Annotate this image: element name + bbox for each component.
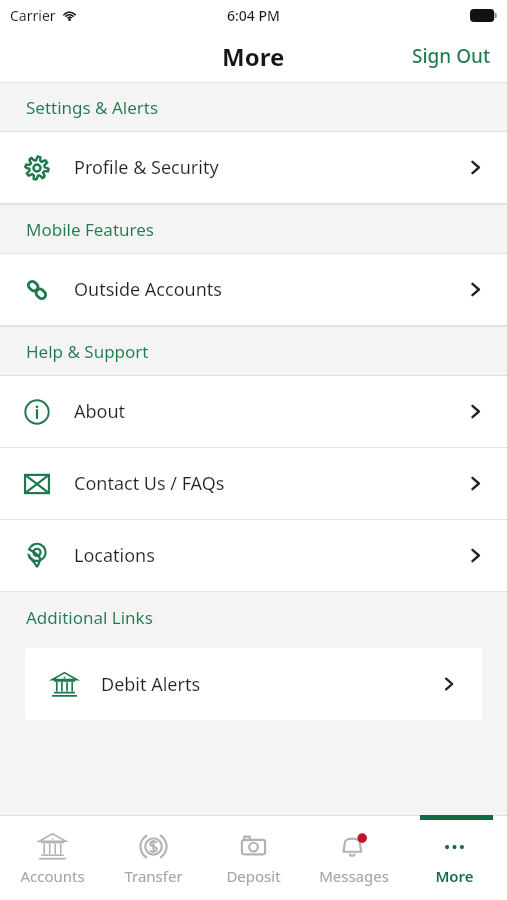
button[interactable]: Sign Out: [396, 35, 507, 77]
staticText: About: [74, 399, 126, 424]
staticText: Sign Out: [412, 43, 491, 69]
button[interactable]: Accounts: [5, 827, 100, 890]
staticText: Accounts: [20, 866, 85, 886]
staticText: Additional Links: [26, 606, 153, 629]
staticText: Outside Accounts: [74, 277, 222, 302]
button[interactable]: Deposit: [206, 827, 301, 890]
staticText: More: [435, 866, 474, 886]
staticText: Mobile Features: [26, 218, 154, 241]
staticText: Messages: [319, 866, 389, 886]
staticText: Profile & Security: [74, 155, 219, 180]
button[interactable]: Profile & Security: [0, 132, 507, 203]
button[interactable]: Debit Alerts: [25, 648, 482, 720]
button[interactable]: Transfer: [106, 827, 201, 890]
staticText: Carrier: [10, 6, 56, 25]
staticText: Debit Alerts: [101, 672, 201, 697]
staticText: Transfer: [124, 866, 183, 886]
staticText: Locations: [74, 543, 155, 568]
button[interactable]: About: [0, 376, 507, 447]
staticText: 6:04 PM: [227, 6, 280, 25]
staticText: Deposit: [226, 866, 281, 886]
staticText: Contact Us / FAQs: [74, 471, 225, 496]
button[interactable]: Contact Us / FAQs: [0, 448, 507, 519]
button[interactable]: More: [407, 827, 502, 890]
staticText: Settings & Alerts: [26, 96, 159, 119]
button[interactable]: Outside Accounts: [0, 254, 507, 325]
button[interactable]: Messages: [306, 827, 401, 890]
staticText: Help & Support: [26, 340, 149, 363]
staticText: More: [222, 40, 285, 73]
button[interactable]: Locations: [0, 520, 507, 591]
